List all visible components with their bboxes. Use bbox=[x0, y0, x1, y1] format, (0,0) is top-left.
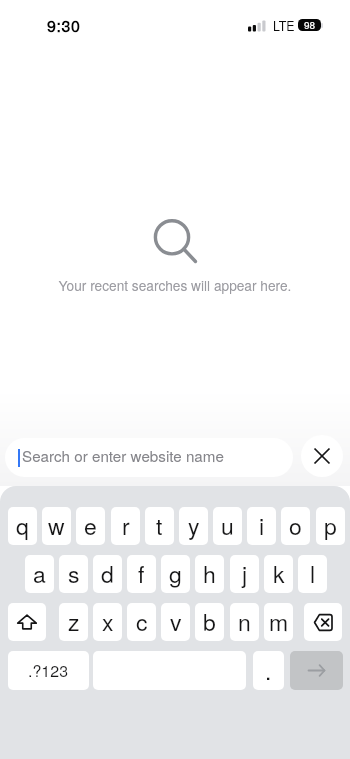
staticText: f bbox=[138, 557, 145, 590]
staticText: Your recent searches will appear here. bbox=[0, 275, 350, 295]
button[interactable]: b bbox=[195, 603, 224, 641]
staticText: d bbox=[101, 557, 114, 590]
button[interactable]: .?123 bbox=[8, 651, 89, 690]
staticText: u bbox=[221, 509, 234, 542]
button[interactable]: e bbox=[76, 507, 105, 545]
staticText: b bbox=[203, 605, 216, 638]
staticText: t bbox=[156, 509, 163, 542]
button[interactable]: v bbox=[161, 603, 190, 641]
button[interactable]: t bbox=[145, 507, 174, 545]
staticText: v bbox=[170, 605, 182, 638]
staticText: Search or enter website name bbox=[22, 445, 224, 467]
button[interactable]: n bbox=[230, 603, 259, 641]
button[interactable]: c bbox=[127, 603, 156, 641]
staticText: .?123 bbox=[28, 659, 69, 682]
button[interactable]: w bbox=[42, 507, 71, 545]
staticText: w bbox=[48, 509, 65, 542]
button[interactable]: l bbox=[298, 555, 327, 593]
button[interactable]: h bbox=[195, 555, 224, 593]
staticText: z bbox=[68, 605, 80, 638]
staticText: h bbox=[203, 557, 216, 590]
staticText: r bbox=[122, 509, 130, 542]
button[interactable]: g bbox=[161, 555, 190, 593]
button[interactable]: z bbox=[59, 603, 88, 641]
button[interactable]: q bbox=[8, 507, 37, 545]
staticText: i bbox=[259, 509, 265, 542]
button[interactable]: p bbox=[316, 507, 345, 545]
staticText: a bbox=[33, 557, 46, 590]
button[interactable]: . bbox=[253, 651, 284, 690]
staticText: e bbox=[84, 509, 97, 542]
button[interactable]: d bbox=[93, 555, 122, 593]
staticText: . bbox=[265, 654, 272, 687]
button[interactable]: s bbox=[59, 555, 88, 593]
staticText: m bbox=[269, 605, 289, 638]
staticText: LTE bbox=[273, 17, 295, 35]
staticText: n bbox=[238, 605, 251, 638]
staticText: y bbox=[188, 509, 200, 542]
staticText: k bbox=[273, 557, 285, 590]
button[interactable]: f bbox=[127, 555, 156, 593]
button[interactable]: a bbox=[25, 555, 54, 593]
staticText: p bbox=[324, 509, 337, 542]
button[interactable]: y bbox=[179, 507, 208, 545]
button[interactable]: Shift bbox=[8, 603, 46, 641]
button[interactable]: Go bbox=[290, 651, 343, 690]
button[interactable]: k bbox=[264, 555, 293, 593]
staticText: s bbox=[68, 557, 80, 590]
staticText: j bbox=[242, 557, 248, 590]
button[interactable]: u bbox=[213, 507, 242, 545]
button[interactable]: o bbox=[281, 507, 310, 545]
button[interactable]: r bbox=[111, 507, 140, 545]
button[interactable]: x bbox=[93, 603, 122, 641]
button[interactable]: Backspace bbox=[304, 603, 342, 641]
button[interactable]: Search or enter website name bbox=[5, 438, 293, 477]
staticText: 98 bbox=[304, 19, 316, 30]
staticText: c bbox=[136, 605, 148, 638]
button[interactable]: m bbox=[264, 603, 293, 641]
button[interactable]: i bbox=[247, 507, 276, 545]
staticText: l bbox=[310, 557, 316, 590]
button[interactable]: j bbox=[230, 555, 259, 593]
button[interactable]: Clear search bbox=[301, 435, 343, 477]
staticText: g bbox=[169, 557, 182, 590]
staticText: o bbox=[289, 509, 302, 542]
staticText: 9:30 bbox=[47, 14, 81, 37]
staticText: q bbox=[16, 509, 29, 542]
staticText: x bbox=[102, 605, 114, 638]
